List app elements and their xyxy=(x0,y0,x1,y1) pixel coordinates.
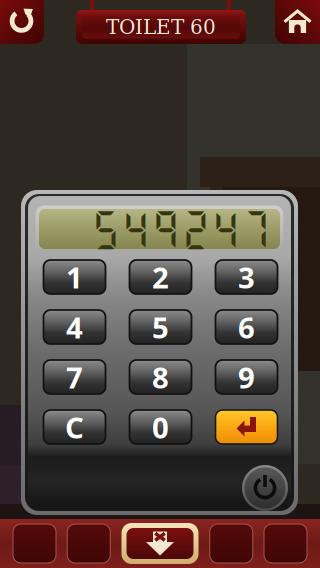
button[interactable]: Home xyxy=(275,0,320,44)
button[interactable]: Empty inventory slot xyxy=(210,524,253,563)
button[interactable]: 5 xyxy=(129,310,191,344)
button[interactable]: Restart xyxy=(0,0,44,44)
button[interactable]: 2 xyxy=(129,260,191,294)
staticText: 0 xyxy=(152,407,169,446)
staticText: 4 xyxy=(66,307,83,346)
button[interactable]: 7 xyxy=(43,360,105,394)
staticText: 2 xyxy=(152,257,169,296)
staticText: 5 xyxy=(152,307,169,346)
staticText: 549247 xyxy=(91,205,271,253)
button[interactable]: 4 xyxy=(43,310,105,344)
button[interactable]: Drop item xyxy=(121,523,198,564)
staticText: 1 xyxy=(66,257,83,296)
button[interactable]: 6 xyxy=(215,310,277,344)
staticText: 7 xyxy=(66,357,83,396)
button[interactable]: Empty inventory slot xyxy=(67,524,110,563)
staticText: 3 xyxy=(238,257,255,296)
staticText: C xyxy=(65,407,84,446)
button[interactable]: Empty inventory slot xyxy=(13,524,56,563)
button[interactable]: 1 xyxy=(43,260,105,294)
button[interactable]: Empty inventory slot xyxy=(264,524,307,563)
button[interactable]: 8 xyxy=(129,360,191,394)
button[interactable]: Enter xyxy=(215,410,277,444)
staticText: TOILET 60 xyxy=(106,15,216,39)
staticText: 6 xyxy=(238,307,255,346)
staticText: 9 xyxy=(238,357,255,396)
button[interactable]: 0 xyxy=(129,410,191,444)
button[interactable]: 3 xyxy=(215,260,277,294)
staticText: 8 xyxy=(152,357,169,396)
button[interactable]: C xyxy=(43,410,105,444)
button[interactable]: Power xyxy=(241,464,289,512)
button[interactable]: 9 xyxy=(215,360,277,394)
